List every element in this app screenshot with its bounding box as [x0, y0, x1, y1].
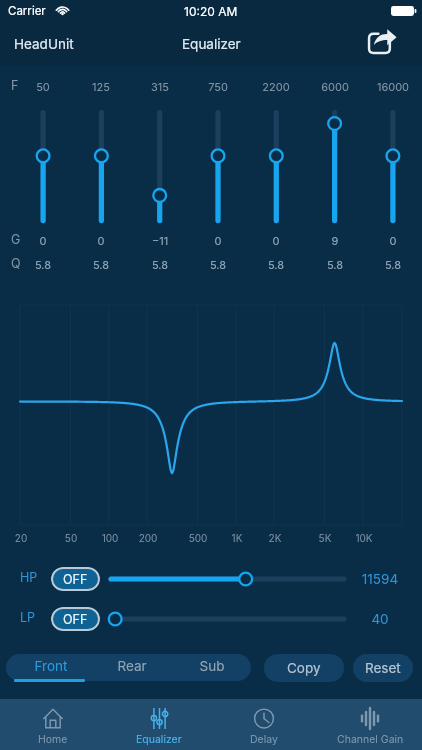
staticText: 0: [56, 234, 146, 247]
button[interactable]: OFF: [51, 607, 100, 631]
staticText: 500: [178, 532, 218, 544]
staticText: Equalizer: [136, 733, 182, 746]
staticText: 5.8: [348, 258, 422, 271]
staticText: Channel Gain: [337, 733, 404, 746]
staticText: F: [11, 78, 19, 93]
button[interactable]: Reset: [353, 654, 413, 682]
staticText: 5.8: [173, 258, 263, 271]
staticText: Carrier: [8, 4, 46, 18]
staticText: 5.8: [290, 258, 380, 271]
staticText: 750: [173, 80, 263, 93]
staticText: 0: [348, 234, 422, 247]
button[interactable]: [92, 654, 172, 681]
staticText: 2K: [255, 532, 295, 544]
button[interactable]: Equalizer: [106, 699, 212, 750]
staticText: 5.8: [56, 258, 146, 271]
button[interactable]: [11, 654, 91, 681]
staticText: 6000: [290, 80, 380, 93]
staticText: 0: [173, 234, 263, 247]
button[interactable]: Share: [356, 24, 406, 64]
button[interactable]: Delay: [211, 699, 317, 750]
staticText: 10:20 AM: [184, 4, 238, 19]
staticText: −11: [115, 234, 205, 247]
staticText: 10K: [344, 532, 384, 544]
staticText: 20: [1, 532, 41, 544]
staticText: 11594: [352, 571, 408, 587]
staticText: 5K: [305, 532, 345, 544]
staticText: 16000: [348, 80, 422, 93]
button[interactable]: Copy: [264, 654, 344, 682]
staticText: OFF: [63, 572, 88, 587]
button[interactable]: [172, 654, 252, 681]
staticText: 0: [231, 234, 321, 247]
staticText: Front: [6, 658, 96, 674]
staticText: HeadUnit: [14, 36, 74, 52]
staticText: HP: [20, 570, 38, 585]
staticText: G: [11, 232, 21, 247]
staticText: LP: [20, 610, 36, 625]
staticText: Copy: [287, 660, 321, 676]
staticText: 5.8: [115, 258, 205, 271]
staticText: 5.8: [231, 258, 321, 271]
staticText: 40: [352, 611, 408, 627]
staticText: 1K: [217, 532, 257, 544]
staticText: Delay: [250, 733, 278, 746]
button[interactable]: HeadUnit: [0, 26, 88, 62]
staticText: OFF: [63, 612, 88, 627]
staticText: 100: [90, 532, 130, 544]
staticText: 50: [0, 80, 88, 93]
staticText: 9: [290, 234, 380, 247]
button[interactable]: Home: [0, 699, 106, 750]
staticText: Reset: [365, 660, 401, 676]
staticText: 0: [0, 234, 88, 247]
staticText: Q: [11, 256, 21, 271]
staticText: 200: [128, 532, 168, 544]
staticText: 125: [56, 80, 146, 93]
button[interactable]: Channel Gain: [317, 699, 422, 750]
staticText: 315: [115, 80, 205, 93]
staticText: Home: [38, 733, 68, 746]
staticText: 50: [51, 532, 91, 544]
staticText: 5.8: [0, 258, 88, 271]
staticText: 2200: [231, 80, 321, 93]
button[interactable]: OFF: [51, 567, 100, 591]
staticText: Sub: [167, 658, 257, 674]
staticText: Rear: [87, 658, 177, 674]
staticText: Equalizer: [182, 36, 241, 52]
